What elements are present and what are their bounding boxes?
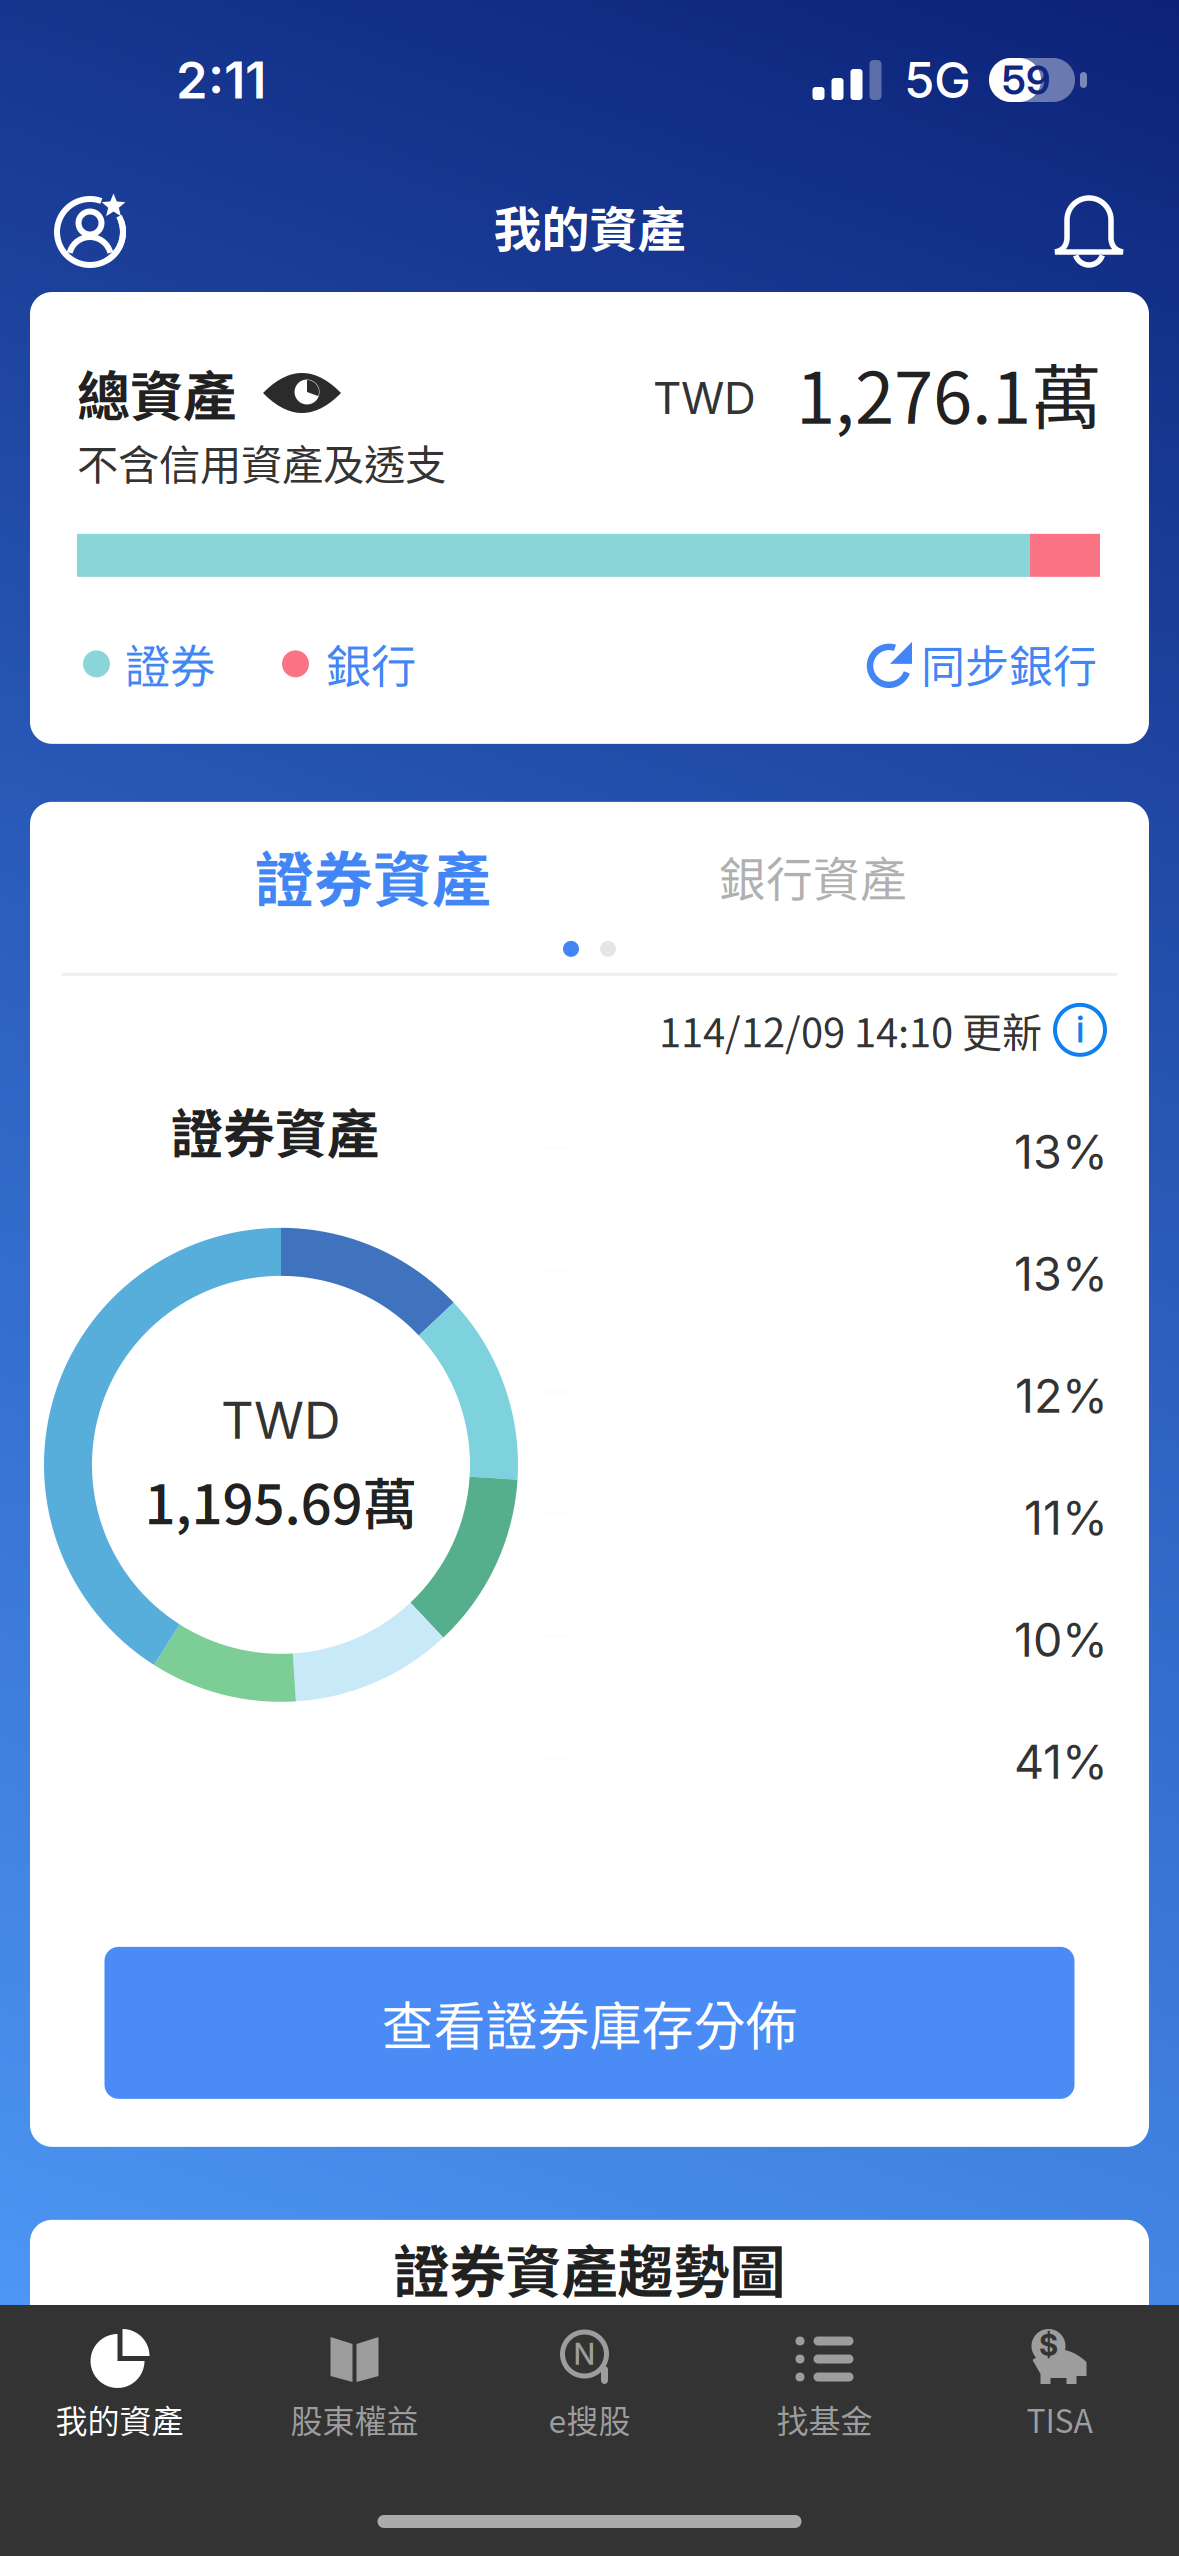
staticText: 13% [1014, 1246, 1108, 1302]
staticText: 銀行資產 [719, 842, 907, 910]
button[interactable]: 同步銀行 [866, 632, 1097, 696]
staticText: e搜股 [548, 2396, 630, 2442]
staticText: 不含信用資產及透支 [77, 432, 446, 492]
staticText: 我的資產 [55, 2396, 183, 2442]
staticText: 證券資產 [255, 833, 491, 918]
button[interactable]: 證券資產 [245, 847, 501, 905]
staticText: 同步銀行 [921, 632, 1097, 696]
staticText: 總資產 [77, 354, 236, 432]
button[interactable]: 通知 [1041, 178, 1137, 274]
staticText: 13% [1014, 1124, 1108, 1180]
button[interactable]: 銀行資產 [709, 847, 917, 905]
button[interactable]: 查看證券庫存分佈 [104, 1947, 1074, 2099]
staticText: TWD [221, 1390, 341, 1451]
button[interactable]: 會員專區 [42, 178, 138, 274]
staticText: $ [1039, 2327, 1058, 2363]
staticText: 59 [1002, 56, 1050, 104]
button[interactable]: 找基金 [707, 2305, 942, 2455]
staticText: 銀行 [326, 631, 416, 697]
staticText: 查看證券庫存分佈 [381, 1985, 797, 2060]
button[interactable]: 我的資產 [2, 2305, 237, 2455]
staticText: 5G [904, 50, 971, 110]
staticText: 114/12/09 14:10 更新 [659, 1001, 1042, 1059]
staticText: 1,276.1萬 [796, 342, 1102, 444]
staticText: 10% [1014, 1612, 1108, 1668]
staticText: 股東權益 [290, 2396, 418, 2442]
staticText: 我的資產 [493, 191, 685, 261]
staticText: 11% [1024, 1490, 1108, 1546]
staticText: 找基金 [776, 2396, 872, 2442]
staticText: 1,195.69萬 [144, 1461, 417, 1540]
staticText: i [1076, 1006, 1084, 1051]
staticText: 41% [1014, 1734, 1108, 1790]
staticText: 12% [1015, 1368, 1108, 1424]
staticText: N [573, 2336, 595, 2372]
staticText: 證券資產趨勢圖 [393, 2227, 785, 2308]
staticText: 2:11 [176, 49, 266, 111]
button[interactable]: 股東權益 [237, 2305, 472, 2455]
staticText: TWD [653, 371, 756, 425]
button[interactable]: 說明 [1053, 1003, 1107, 1057]
button[interactable]: N [472, 2305, 707, 2455]
staticText: 證券 [125, 631, 215, 697]
staticText: 證券資產 [171, 1093, 379, 1168]
button[interactable]: $ [942, 2305, 1177, 2455]
staticText: TISA [1026, 2396, 1092, 2442]
